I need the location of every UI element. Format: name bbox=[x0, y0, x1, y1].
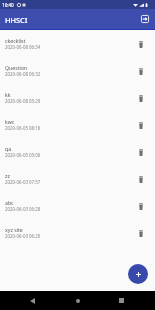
button[interactable]: Delete bbox=[136, 120, 146, 130]
staticText: abc bbox=[5, 199, 14, 206]
button[interactable]: Recent apps bbox=[104, 291, 139, 310]
button[interactable]: xyz site bbox=[0, 219, 155, 246]
button[interactable]: Delete bbox=[136, 147, 146, 157]
staticText: 2020-06-05 08:16 bbox=[5, 125, 41, 131]
button[interactable]: Delete bbox=[136, 93, 146, 103]
staticText: 2020-06-08 05:29 bbox=[5, 98, 41, 104]
button[interactable]: Question bbox=[0, 57, 155, 84]
button[interactable]: abc bbox=[0, 192, 155, 219]
button[interactable]: kk bbox=[0, 84, 155, 111]
staticText: 2020-06-03 06:20 bbox=[5, 233, 41, 239]
button[interactable]: Delete bbox=[136, 39, 146, 49]
button[interactable]: Back bbox=[15, 291, 50, 310]
button[interactable]: Delete bbox=[136, 201, 146, 211]
button[interactable]: Log out bbox=[138, 12, 152, 26]
button[interactable]: ckecklist bbox=[0, 30, 155, 57]
staticText: xyz site bbox=[5, 226, 23, 233]
staticText: kk bbox=[5, 91, 11, 98]
staticText: 2020-06-03 07:57 bbox=[5, 179, 41, 185]
staticText: HHSCI bbox=[5, 15, 28, 25]
staticText: 2020-06-05 05:06 bbox=[5, 152, 41, 158]
button[interactable]: Delete bbox=[136, 174, 146, 184]
staticText: zz bbox=[5, 172, 10, 179]
button[interactable]: Delete bbox=[136, 66, 146, 76]
button[interactable]: Home bbox=[60, 291, 95, 310]
staticText: ckecklist bbox=[5, 37, 26, 44]
button[interactable]: kwc bbox=[0, 111, 155, 138]
staticText: 2020-06-03 06:28 bbox=[5, 206, 41, 212]
staticText: kwc bbox=[5, 118, 15, 125]
staticText: Question bbox=[5, 64, 28, 71]
staticText: 10:40 bbox=[2, 2, 14, 8]
staticText: 2020-06-08 06:32 bbox=[5, 71, 41, 77]
staticText: qa bbox=[5, 145, 12, 152]
button[interactable]: qa bbox=[0, 138, 155, 165]
button[interactable]: Add new bbox=[128, 264, 148, 284]
button[interactable]: zz bbox=[0, 165, 155, 192]
button[interactable]: Delete bbox=[136, 228, 146, 238]
staticText: 2020-06-08 06:34 bbox=[5, 44, 41, 50]
